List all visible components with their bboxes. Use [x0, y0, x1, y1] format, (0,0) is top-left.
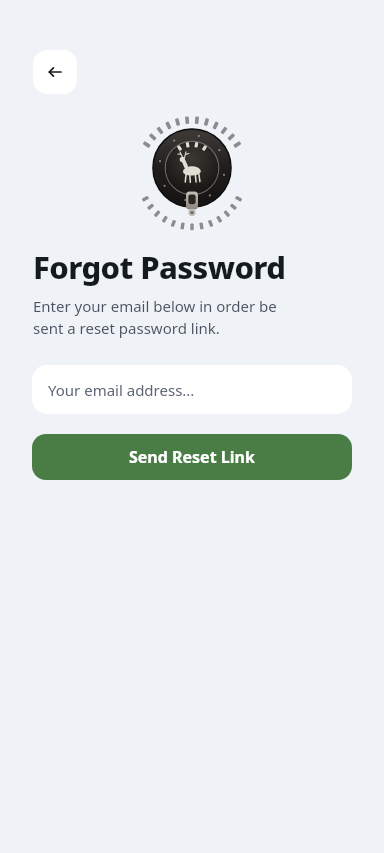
button[interactable]: Your email address...	[32, 365, 352, 414]
button[interactable]: Back	[33, 50, 77, 94]
staticText: Send Reset Link	[129, 446, 255, 468]
staticText: Enter your email below in order be sent …	[33, 296, 277, 339]
staticText: Your email address...	[48, 380, 195, 400]
staticText: Forgot Password	[33, 246, 286, 288]
button[interactable]: Send Reset Link	[32, 434, 352, 480]
